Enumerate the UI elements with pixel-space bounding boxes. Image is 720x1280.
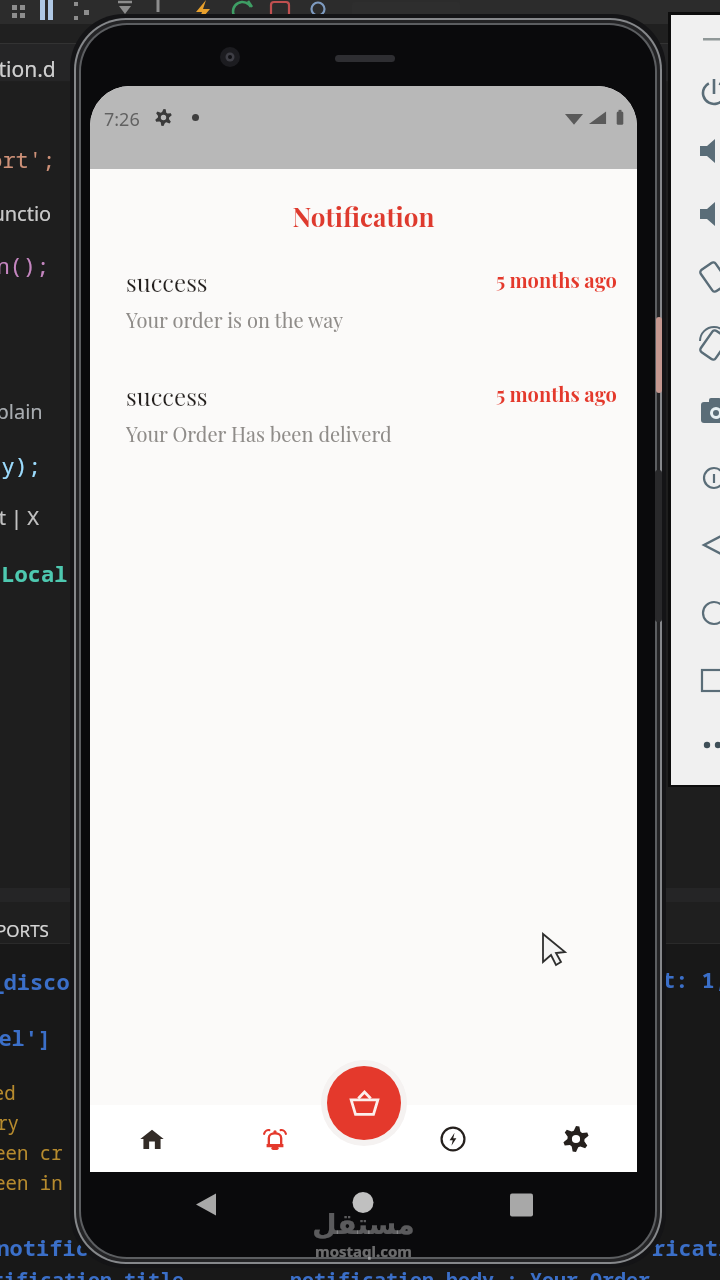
staticText: rication [652, 1232, 720, 1262]
staticText: s been in [0, 1170, 63, 1196]
staticText: مستقل [312, 1208, 415, 1241]
staticText: mostaql.com [315, 1241, 412, 1261]
staticText: pplication.d [0, 55, 56, 84]
button[interactable]: success [90, 380, 637, 447]
staticText: s been cr [0, 1140, 63, 1166]
staticText: notification.body : Your Order [290, 1266, 650, 1280]
staticText: Your Order Has been deliverd [126, 420, 392, 447]
staticText: ized [0, 1080, 16, 1106]
staticText: e notificat [0, 1232, 116, 1262]
button[interactable]: success [90, 266, 637, 333]
staticText: PORTS [0, 919, 49, 942]
staticText: ent | X [0, 504, 39, 531]
button[interactable]: Cart [327, 1066, 401, 1140]
button[interactable]: Notifications [252, 1105, 298, 1172]
staticText: Notification [90, 199, 637, 234]
staticText: ns_disco [0, 966, 70, 996]
staticText: t: 1, [662, 964, 720, 994]
staticText: odel'] [0, 1022, 52, 1052]
staticText: emory [0, 1110, 20, 1136]
staticText: explain [0, 398, 43, 425]
staticText: ain(); [0, 250, 50, 280]
button[interactable]: Home [129, 1105, 175, 1172]
staticText: Your order is on the way [126, 306, 344, 333]
staticText: 5 months ago [496, 380, 617, 407]
staticText: port'; [0, 144, 56, 174]
staticText: success [126, 266, 208, 298]
button[interactable]: Offers [430, 1105, 476, 1172]
staticText: 7:26 [104, 107, 140, 126]
staticText: ody); [0, 450, 42, 480]
staticText: otification.title [0, 1266, 184, 1280]
button[interactable]: Settings [553, 1105, 599, 1172]
staticText: ine Functio [0, 200, 52, 227]
staticText: e(Local [0, 558, 68, 588]
staticText: 5 months ago [496, 266, 617, 293]
staticText: success [126, 380, 208, 412]
